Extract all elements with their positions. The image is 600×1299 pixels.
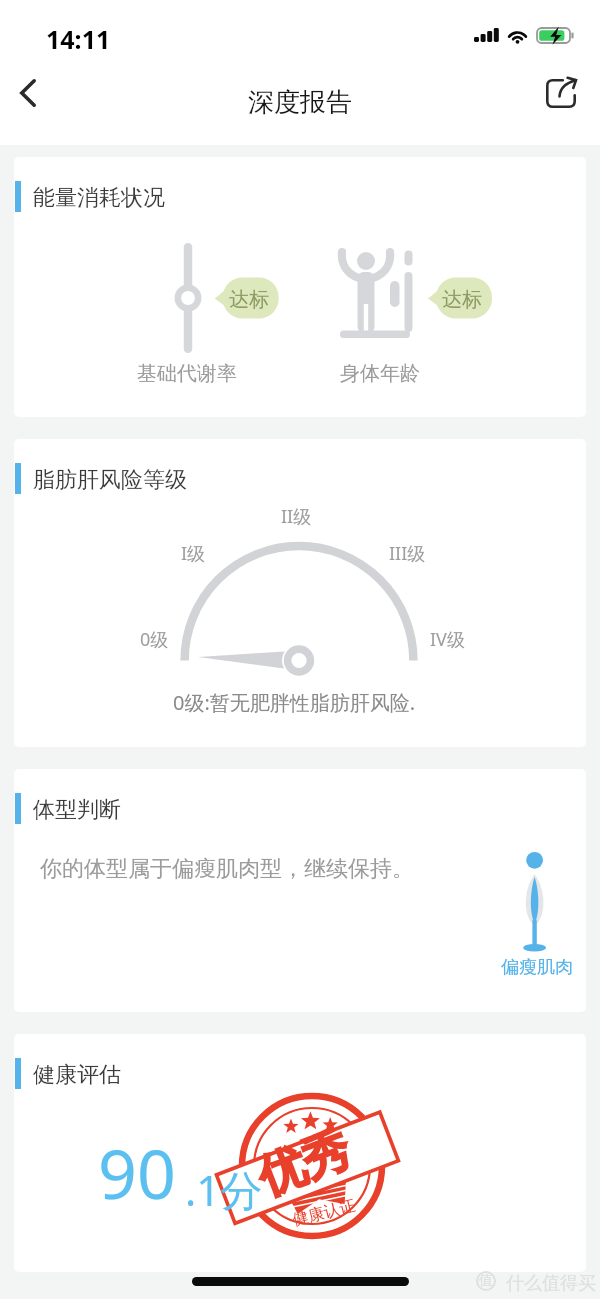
staticText: 90 bbox=[98, 1126, 176, 1219]
staticText: 优秀 bbox=[249, 1119, 358, 1208]
staticText: 健康认证 bbox=[290, 1196, 357, 1230]
staticText: 什么值得买 bbox=[506, 1272, 596, 1295]
staticText: 你的体型属于偏瘦肌肉型，继续保持。 bbox=[40, 855, 414, 883]
staticText: 0级:暂无肥胖性脂肪肝风险. bbox=[173, 689, 416, 716]
staticText: 值 bbox=[479, 1272, 493, 1290]
staticText: 身体年龄 bbox=[340, 361, 420, 386]
button[interactable]: 能量消耗状况 bbox=[14, 157, 586, 417]
button[interactable]: Share bbox=[533, 65, 589, 121]
button[interactable]: 脂肪肝风险等级 bbox=[14, 439, 586, 747]
staticText: 达标 bbox=[442, 287, 482, 312]
staticText: 健康评估 bbox=[33, 1061, 121, 1089]
staticText: 体型判断 bbox=[33, 796, 121, 824]
staticText: III级 bbox=[389, 541, 426, 566]
button[interactable]: Back bbox=[0, 65, 56, 121]
staticText: 脂肪肝风险等级 bbox=[33, 466, 187, 494]
button[interactable]: 体型判断 bbox=[14, 769, 586, 1012]
staticText: II级 bbox=[281, 504, 312, 529]
staticText: 基础代谢率 bbox=[137, 361, 237, 386]
staticText: 能量消耗状况 bbox=[33, 184, 165, 212]
staticText: 达标 bbox=[229, 287, 269, 312]
staticText: 偏瘦肌肉 bbox=[501, 956, 573, 979]
staticText: I级 bbox=[181, 541, 206, 566]
staticText: IV级 bbox=[430, 627, 465, 652]
staticText: 14:11 bbox=[46, 22, 111, 56]
staticText: 0级 bbox=[140, 627, 169, 652]
staticText: 深度报告 bbox=[248, 86, 352, 119]
staticText: .1分 bbox=[185, 1161, 263, 1218]
button[interactable]: 健康评估 bbox=[14, 1034, 586, 1272]
